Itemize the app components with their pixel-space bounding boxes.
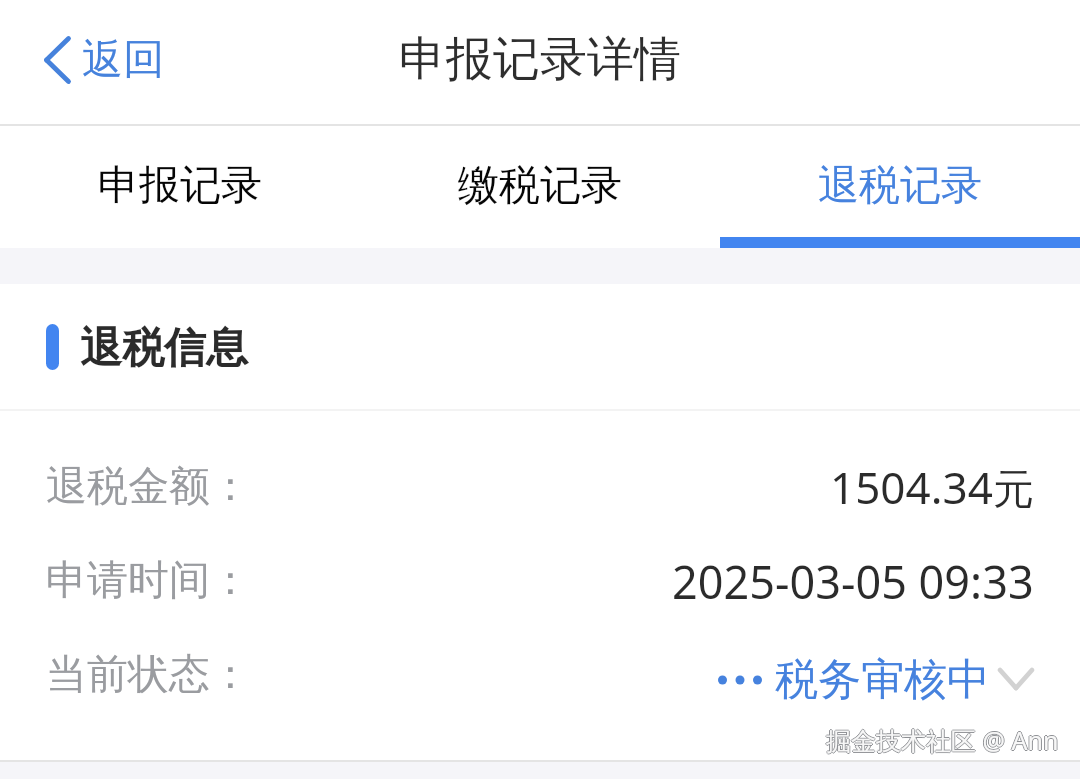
other: 展开 Expand status xyxy=(998,668,1034,690)
staticText: 掘金技术社区 @ Ann xyxy=(826,722,1059,756)
staticText: 申报记录 xyxy=(98,160,262,212)
staticText: 返回 xyxy=(82,34,164,86)
staticText: 当前状态： xyxy=(46,649,251,701)
staticText: 缴税记录 xyxy=(458,160,622,212)
button[interactable]: 申报记录 xyxy=(0,126,360,248)
staticText: 元 xyxy=(993,464,1034,516)
staticText: 退税记录 xyxy=(818,160,982,212)
button[interactable]: 缴税记录 xyxy=(360,126,720,248)
button[interactable]: 税务审核中 xyxy=(718,644,1034,706)
staticText: 2025-03-05 09:33 xyxy=(672,551,1034,612)
staticText: 退税信息 xyxy=(80,322,248,375)
staticText: 掘金技术社区 @ Ann xyxy=(825,723,1058,757)
staticText: 税务审核中 xyxy=(775,653,990,707)
staticText: 掘金技术社区 @ Ann xyxy=(826,724,1059,758)
staticText: 退税金额： xyxy=(46,461,251,513)
staticText: 掘金技术社区 @ Ann xyxy=(827,723,1060,757)
button[interactable]: 退税记录 xyxy=(720,126,1080,248)
staticText: 申报记录详情 xyxy=(399,30,681,89)
staticText: 掘金技术社区 @ Ann xyxy=(826,723,1059,757)
staticText: 1504.34 xyxy=(830,457,993,517)
button[interactable]: 返回 Back xyxy=(24,20,184,100)
staticText: 申请时间： xyxy=(46,555,251,607)
